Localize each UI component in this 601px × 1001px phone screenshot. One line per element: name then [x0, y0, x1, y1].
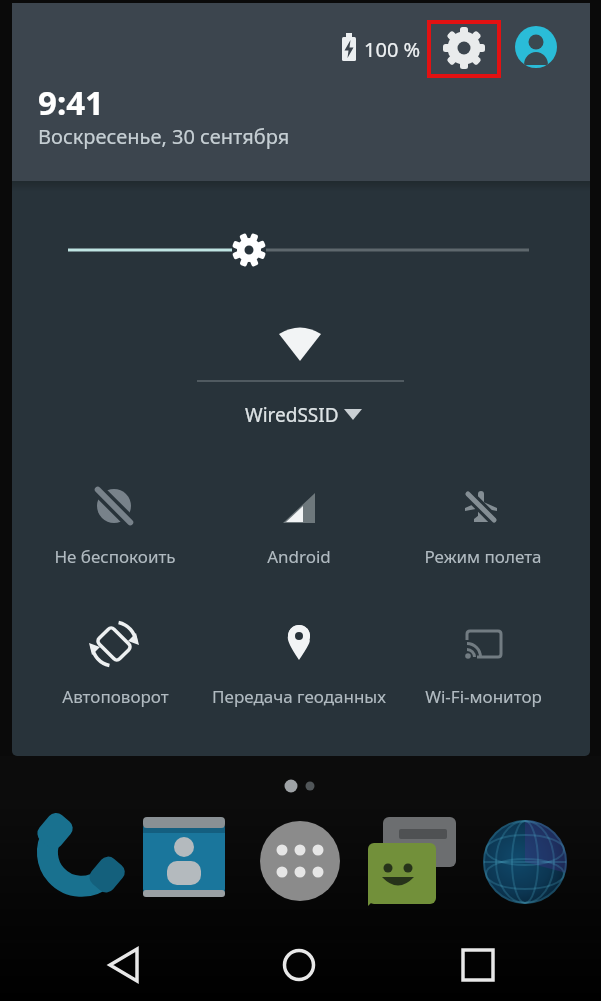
- staticText: Wi-Fi-монитор: [425, 685, 542, 708]
- button[interactable]: [145, 818, 229, 902]
- button[interactable]: [515, 26, 557, 68]
- button[interactable]: [427, 20, 501, 78]
- staticText: Передача геоданных: [212, 685, 386, 708]
- button[interactable]: [258, 818, 342, 902]
- button[interactable]: Wi-Fi-монитор: [391, 608, 575, 718]
- button[interactable]: [95, 937, 155, 995]
- button[interactable]: [33, 818, 117, 902]
- button[interactable]: Не беспокоить: [23, 468, 207, 578]
- button[interactable]: [447, 937, 507, 995]
- button[interactable]: Режим полета: [391, 468, 575, 578]
- button[interactable]: Передача геоданных: [207, 608, 391, 718]
- button[interactable]: WiredSSID: [235, 398, 365, 432]
- staticText: WiredSSID: [245, 402, 339, 428]
- staticText: Android: [267, 545, 331, 568]
- staticText: Не беспокоить: [54, 545, 176, 568]
- staticText: 100 %: [364, 36, 421, 63]
- staticText: 9:41: [38, 80, 104, 125]
- button[interactable]: [60, 232, 538, 268]
- button[interactable]: [370, 818, 454, 902]
- button[interactable]: Автоповорот: [23, 608, 207, 718]
- button[interactable]: Android: [207, 468, 391, 578]
- staticText: Режим полета: [424, 545, 542, 568]
- staticText: Автоповорот: [62, 685, 169, 708]
- button[interactable]: [270, 937, 330, 995]
- staticText: Воскресенье, 30 сентября: [38, 123, 290, 150]
- button[interactable]: [483, 818, 567, 902]
